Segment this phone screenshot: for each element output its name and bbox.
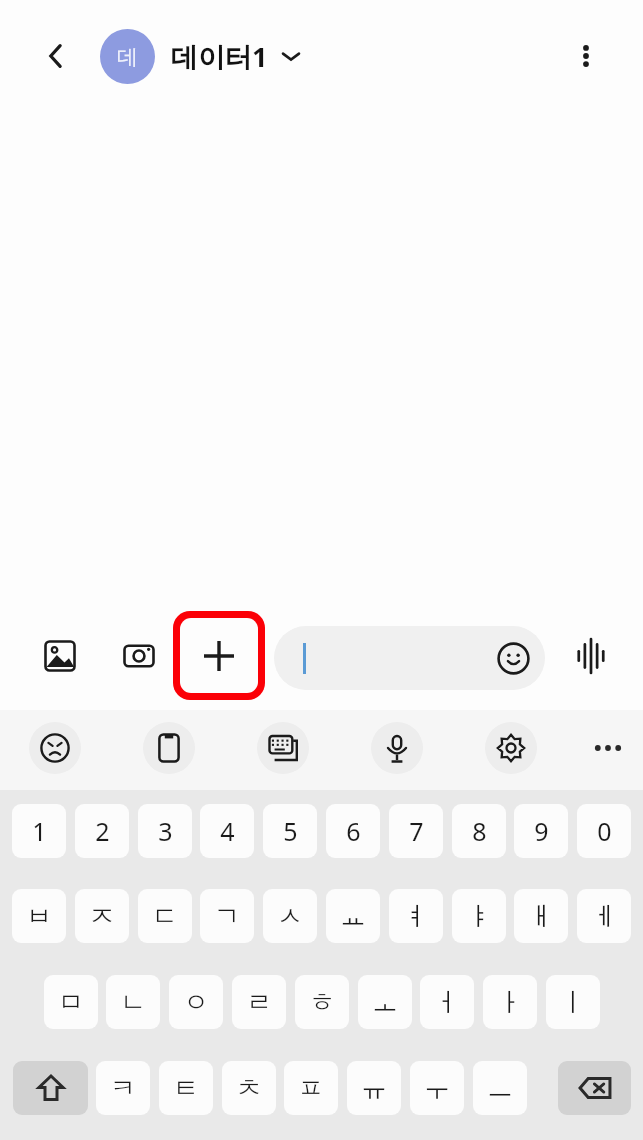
staticText: ㅏ bbox=[497, 986, 523, 1019]
button[interactable]: Voice message bbox=[563, 628, 619, 684]
staticText: ㅠ bbox=[361, 1072, 387, 1105]
button[interactable]: ㅠ bbox=[347, 1061, 401, 1115]
button[interactable]: Backspace bbox=[558, 1061, 631, 1115]
staticText: ㅎ bbox=[309, 986, 335, 1019]
staticText: 데이터1 bbox=[171, 38, 268, 75]
staticText: 4 bbox=[220, 814, 235, 848]
staticText: ㄹ bbox=[246, 986, 272, 1019]
staticText: ㅌ bbox=[173, 1072, 199, 1105]
button[interactable]: ㄴ bbox=[106, 975, 160, 1029]
staticText: ㄱ bbox=[214, 900, 240, 933]
button[interactable]: Voice input bbox=[371, 722, 423, 774]
staticText: 5 bbox=[283, 814, 298, 848]
staticText: ㅅ bbox=[277, 900, 303, 933]
staticText: ㅍ bbox=[298, 1072, 324, 1105]
staticText: ㅊ bbox=[236, 1072, 262, 1105]
button[interactable]: Stickers bbox=[29, 722, 81, 774]
button[interactable]: Keyboard modes bbox=[257, 722, 309, 774]
button[interactable]: 데 bbox=[100, 22, 301, 90]
button[interactable]: 7 bbox=[389, 804, 443, 858]
staticText: 0 bbox=[597, 814, 612, 848]
staticText: ㅋ bbox=[110, 1072, 136, 1105]
button[interactable]: ㄷ bbox=[138, 889, 192, 943]
staticText: ㅐ bbox=[528, 900, 554, 933]
staticText: ㅗ bbox=[372, 986, 398, 1019]
button[interactable]: ㅏ bbox=[483, 975, 537, 1029]
staticText: ㅁ bbox=[58, 986, 84, 1019]
button[interactable]: ㅁ bbox=[44, 975, 98, 1029]
button[interactable]: 8 bbox=[452, 804, 506, 858]
button[interactable]: ㅣ bbox=[546, 975, 600, 1029]
button[interactable]: ㅅ bbox=[263, 889, 317, 943]
button[interactable]: ㅐ bbox=[514, 889, 568, 943]
button[interactable]: 9 bbox=[514, 804, 568, 858]
button[interactable]: Add attachment bbox=[180, 618, 258, 693]
button[interactable]: Settings bbox=[485, 722, 537, 774]
staticText: ㅛ bbox=[340, 900, 366, 933]
staticText: ㅔ bbox=[591, 900, 617, 933]
staticText: 1 bbox=[32, 814, 47, 848]
staticText: 7 bbox=[409, 814, 424, 848]
button[interactable]: ㄹ bbox=[232, 975, 286, 1029]
staticText: ㅡ bbox=[487, 1072, 513, 1105]
button[interactable]: ㅇ bbox=[169, 975, 223, 1029]
staticText: 6 bbox=[346, 814, 361, 848]
button[interactable]: ㅔ bbox=[577, 889, 631, 943]
staticText: 데 bbox=[117, 44, 138, 70]
button[interactable]: ㅌ bbox=[159, 1061, 213, 1115]
button[interactable]: 2 bbox=[75, 804, 129, 858]
button[interactable]: ㅎ bbox=[295, 975, 349, 1029]
staticText: 2 bbox=[95, 814, 110, 848]
button[interactable]: ㅓ bbox=[420, 975, 474, 1029]
staticText: ㅑ bbox=[466, 900, 492, 933]
button[interactable]: 6 bbox=[326, 804, 380, 858]
staticText: 9 bbox=[534, 814, 549, 848]
button[interactable]: ㅕ bbox=[389, 889, 443, 943]
button[interactable]: ㅂ bbox=[12, 889, 66, 943]
button[interactable]: Emoji bbox=[491, 636, 535, 680]
staticText: ㅓ bbox=[434, 986, 460, 1019]
button[interactable]: ㅗ bbox=[358, 975, 412, 1029]
staticText: ㅂ bbox=[26, 900, 52, 933]
staticText: ㅇ bbox=[183, 986, 209, 1019]
button[interactable]: Shift bbox=[13, 1061, 88, 1115]
button[interactable]: 3 bbox=[138, 804, 192, 858]
button[interactable]: ㅡ bbox=[473, 1061, 527, 1115]
button[interactable]: ㄱ bbox=[200, 889, 254, 943]
staticText: ㅣ bbox=[560, 986, 586, 1019]
button[interactable]: ㅈ bbox=[75, 889, 129, 943]
button[interactable]: Gallery bbox=[32, 628, 88, 684]
button[interactable]: 5 bbox=[263, 804, 317, 858]
staticText: 3 bbox=[158, 814, 173, 848]
button[interactable]: 0 bbox=[577, 804, 631, 858]
button[interactable]: Back bbox=[28, 28, 84, 84]
button[interactable]: More options bbox=[558, 28, 614, 84]
button[interactable]: Camera bbox=[111, 628, 167, 684]
button[interactable]: ㅜ bbox=[410, 1061, 464, 1115]
staticText: ㅕ bbox=[403, 900, 429, 933]
staticText: ㅈ bbox=[89, 900, 115, 933]
button[interactable]: Clipboard bbox=[143, 722, 195, 774]
button[interactable]: 1 bbox=[12, 804, 66, 858]
button[interactable]: ㅊ bbox=[222, 1061, 276, 1115]
button[interactable]: Emoji bbox=[274, 626, 545, 690]
staticText: ㅜ bbox=[424, 1072, 450, 1105]
button[interactable]: More bbox=[582, 722, 634, 774]
button[interactable]: ㅍ bbox=[284, 1061, 338, 1115]
button[interactable]: 4 bbox=[200, 804, 254, 858]
staticText: 8 bbox=[472, 814, 487, 848]
button[interactable]: ㅛ bbox=[326, 889, 380, 943]
staticText: ㄴ bbox=[120, 986, 146, 1019]
button[interactable]: ㅑ bbox=[452, 889, 506, 943]
staticText: ㄷ bbox=[152, 900, 178, 933]
button[interactable]: ㅋ bbox=[96, 1061, 150, 1115]
